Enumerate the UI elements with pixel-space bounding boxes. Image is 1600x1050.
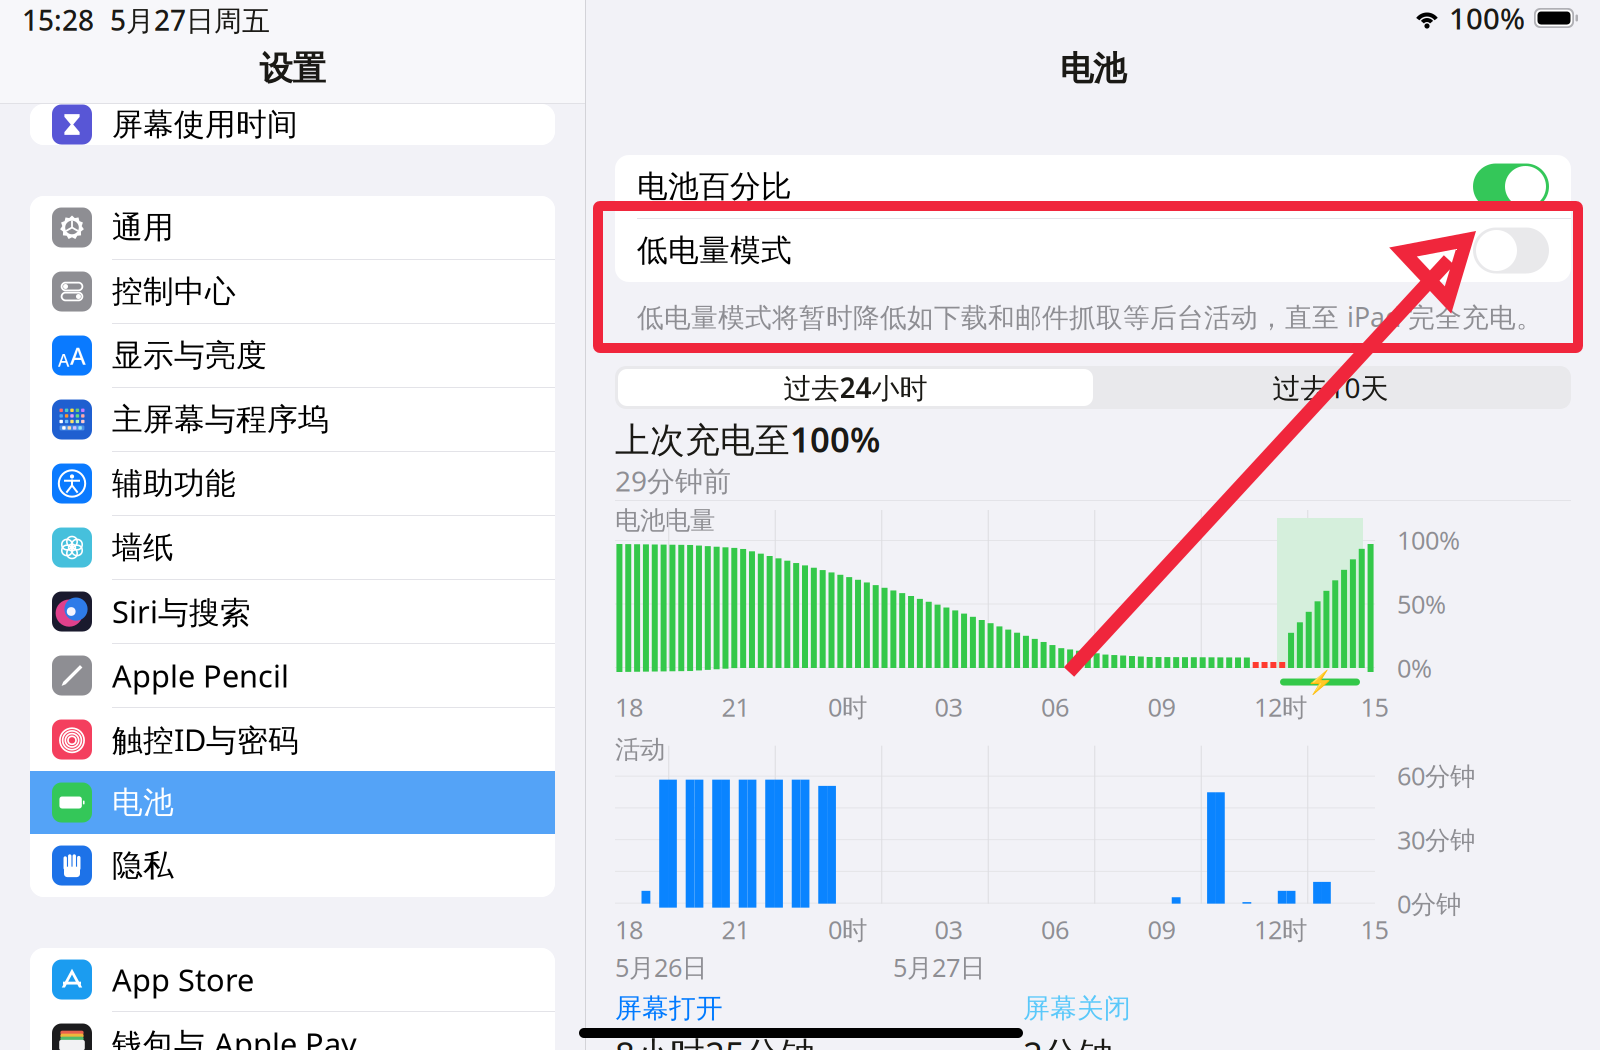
- staticText: 2分钟: [1023, 1031, 1113, 1050]
- button[interactable]: Apple Pencil: [30, 644, 555, 707]
- button[interactable]: Siri与搜索: [30, 580, 555, 643]
- staticText: 5月27日周五: [110, 1, 270, 39]
- staticText: 0%: [1397, 651, 1432, 685]
- staticText: 显示与亮度: [112, 337, 267, 374]
- staticText: 21: [721, 690, 749, 724]
- button[interactable]: 墙纸: [30, 516, 555, 579]
- staticText: 0时: [828, 913, 867, 946]
- staticText: 辅助功能: [112, 465, 236, 502]
- button[interactable]: 电池: [30, 771, 555, 834]
- staticText: 60分钟: [1397, 759, 1475, 792]
- staticText: ⚡: [1306, 669, 1334, 695]
- staticText: 03: [934, 690, 962, 724]
- staticText: 5月26日: [615, 950, 707, 984]
- staticText: 电池: [1060, 48, 1126, 89]
- button[interactable]: 通用: [30, 196, 555, 259]
- staticText: 墙纸: [112, 529, 174, 566]
- staticText: 主屏幕与程序坞: [112, 401, 329, 438]
- staticText: 电池: [112, 784, 174, 821]
- button[interactable]: 辅助功能: [30, 452, 555, 515]
- button[interactable]: 电池百分比: [615, 155, 1571, 218]
- staticText: 30分钟: [1397, 823, 1475, 856]
- staticText: 21: [721, 913, 749, 946]
- staticText: 50%: [1397, 587, 1446, 621]
- button[interactable]: 隐私: [30, 834, 555, 897]
- button[interactable]: 钱包与 Apple Pay: [30, 1012, 555, 1050]
- staticText: 低电量模式将暂时降低如下载和邮件抓取等后台活动，直至 iPad 完全充电。: [637, 299, 1543, 334]
- button[interactable]: A: [30, 324, 555, 387]
- staticText: 过去24小时: [783, 369, 927, 406]
- staticText: Siri与搜索: [112, 591, 251, 632]
- staticText: 过去10天: [1272, 369, 1388, 406]
- staticText: 15:28: [22, 1, 94, 39]
- staticText: 100%: [1397, 523, 1460, 557]
- button[interactable]: 过去10天: [1093, 369, 1568, 406]
- staticText: 屏幕关闭: [1023, 992, 1131, 1025]
- button[interactable]: 触控ID与密码: [30, 708, 555, 771]
- staticText: 06: [1041, 913, 1069, 946]
- staticText: 100%: [1449, 0, 1525, 37]
- button[interactable]: 主屏幕与程序坞: [30, 388, 555, 451]
- staticText: 设置: [259, 48, 325, 89]
- staticText: 钱包与 Apple Pay: [112, 1023, 357, 1050]
- staticText: 15: [1360, 690, 1388, 724]
- staticText: 0时: [828, 690, 867, 724]
- staticText: 屏幕打开: [615, 992, 723, 1025]
- staticText: 29分钟前: [615, 462, 731, 499]
- staticText: 电池电量: [615, 505, 715, 536]
- staticText: 0分钟: [1397, 887, 1461, 920]
- staticText: 触控ID与密码: [112, 719, 299, 760]
- staticText: 通用: [112, 209, 174, 246]
- staticText: 18: [615, 913, 643, 946]
- button[interactable]: 控制中心: [30, 260, 555, 323]
- staticText: 活动: [615, 734, 665, 765]
- staticText: 06: [1041, 690, 1069, 724]
- staticText: A: [58, 348, 69, 371]
- staticText: 8小时25分钟: [615, 1031, 815, 1050]
- staticText: App Store: [112, 959, 254, 1000]
- staticText: 电池百分比: [637, 168, 792, 205]
- staticText: 12时: [1254, 913, 1307, 946]
- staticText: 18: [615, 690, 643, 724]
- staticText: 09: [1147, 690, 1175, 724]
- button[interactable]: 低电量模式: [615, 219, 1571, 282]
- button[interactable]: App Store: [30, 948, 555, 1011]
- staticText: 屏幕使用时间: [112, 106, 298, 143]
- staticText: Apple Pencil: [112, 655, 289, 696]
- button[interactable]: 屏幕使用时间: [30, 93, 555, 156]
- staticText: A: [70, 340, 86, 371]
- staticText: 15: [1360, 913, 1388, 946]
- staticText: 12时: [1254, 690, 1307, 724]
- staticText: 隐私: [112, 847, 174, 884]
- staticText: 09: [1147, 913, 1175, 946]
- staticText: 5月27日: [893, 950, 985, 984]
- staticText: 控制中心: [112, 273, 236, 310]
- button[interactable]: 过去24小时: [618, 369, 1093, 406]
- staticText: 上次充电至100%: [615, 416, 880, 462]
- staticText: 03: [934, 913, 962, 946]
- staticText: 低电量模式: [637, 232, 792, 269]
